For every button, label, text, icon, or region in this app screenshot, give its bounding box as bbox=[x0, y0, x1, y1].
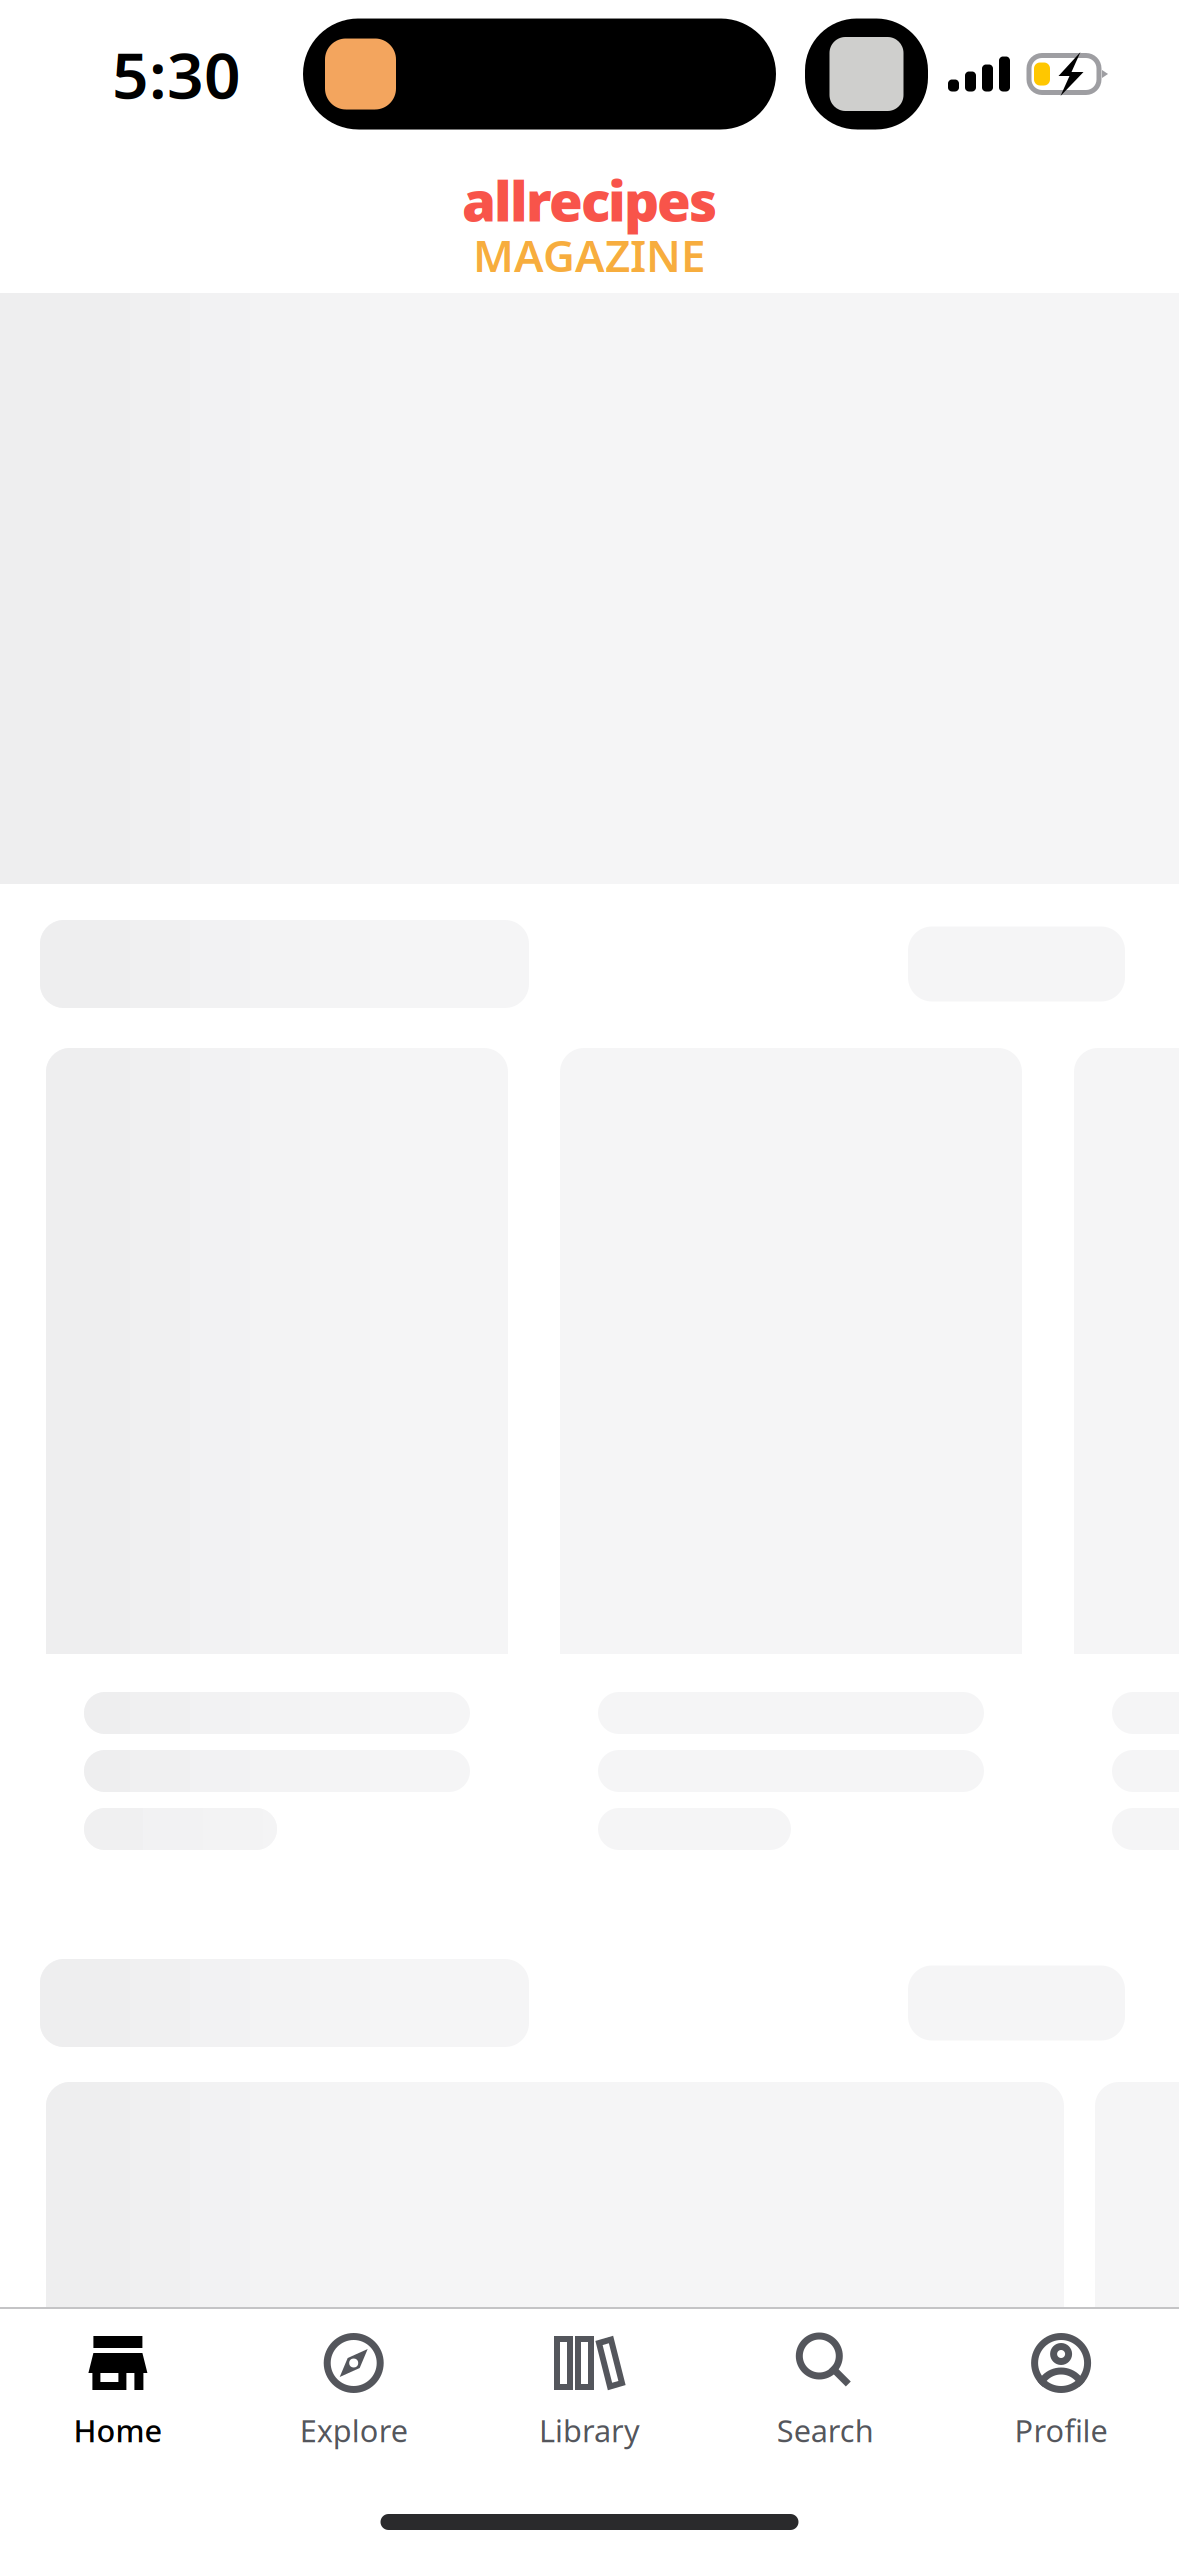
button[interactable] bbox=[1074, 1048, 1180, 1883]
staticText: MAGAZINE bbox=[473, 226, 706, 284]
staticText: Profile bbox=[1015, 2410, 1108, 2451]
staticText: Search bbox=[777, 2410, 874, 2451]
staticText: Explore bbox=[300, 2410, 408, 2451]
button[interactable]: Home bbox=[0, 2309, 236, 2465]
staticText: Home bbox=[73, 2410, 162, 2451]
button[interactable] bbox=[46, 1048, 508, 1883]
button[interactable] bbox=[560, 1048, 1022, 1883]
button[interactable]: Search bbox=[707, 2309, 943, 2465]
button[interactable]: Profile bbox=[943, 2309, 1179, 2465]
staticText: allrecipes bbox=[462, 164, 717, 237]
staticText: 5:30 bbox=[112, 31, 241, 116]
button[interactable]: Explore bbox=[236, 2309, 472, 2465]
button[interactable]: Library bbox=[472, 2309, 707, 2465]
staticText: Library bbox=[539, 2410, 640, 2451]
